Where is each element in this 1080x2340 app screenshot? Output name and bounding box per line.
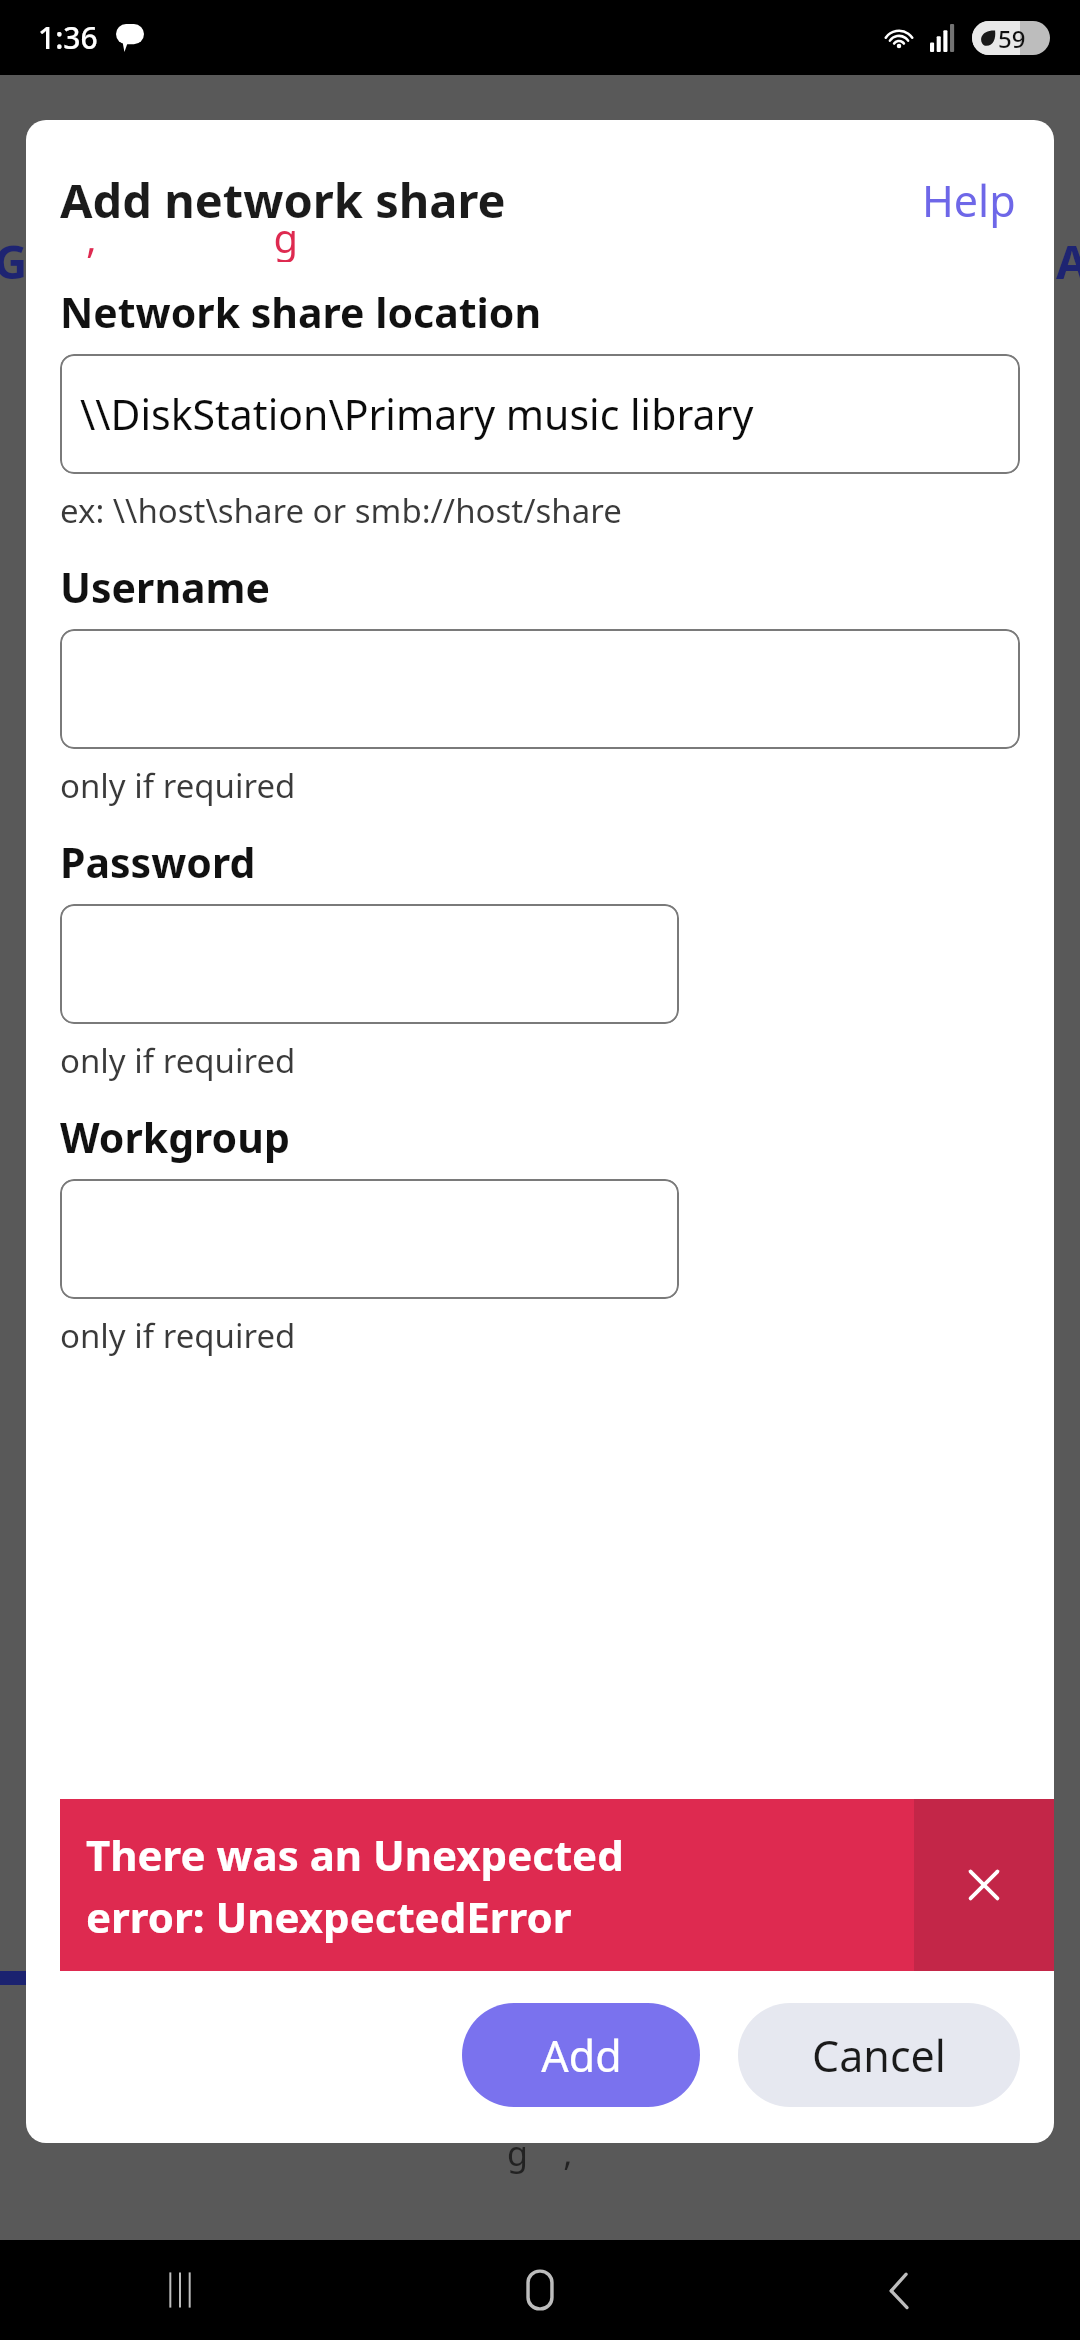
staticText: Username [60, 559, 271, 615]
staticText: A [1056, 230, 1080, 293]
staticText: g , [507, 2130, 573, 2176]
staticText: Cancel [812, 2026, 946, 2085]
button[interactable] [60, 629, 1020, 749]
staticText: only if required [60, 1038, 296, 1083]
button[interactable]: Recent apps [0, 2240, 360, 2340]
button[interactable] [60, 1179, 679, 1299]
button[interactable] [60, 904, 679, 1024]
staticText: , g [86, 210, 299, 262]
staticText: only if required [60, 763, 296, 808]
staticText: \\DiskStation\Primary music library [80, 386, 754, 442]
staticText: 1:36 [38, 17, 98, 58]
staticText: 59 [998, 22, 1026, 55]
staticText: Add network share [60, 168, 506, 232]
button[interactable]: Dismiss error [914, 1799, 1054, 1971]
staticText: ex: \\host\share or smb://host/share [60, 488, 622, 533]
button[interactable]: Help [918, 169, 1020, 232]
button[interactable]: Cancel [738, 2003, 1020, 2107]
staticText: Network share location [60, 284, 542, 340]
staticText: Add [541, 2026, 622, 2085]
staticText: only if required [60, 1313, 296, 1358]
staticText: Password [60, 834, 256, 890]
button[interactable]: Back [720, 2240, 1080, 2340]
staticText: Help [922, 171, 1016, 230]
staticText: G [0, 230, 28, 293]
staticText: There was an Unexpected error: Unexpecte… [86, 1826, 624, 1945]
button[interactable]: Add [462, 2003, 700, 2107]
staticText: Workgroup [60, 1109, 290, 1165]
button[interactable]: \\DiskStation\Primary music library [60, 354, 1020, 474]
button[interactable]: Home [360, 2240, 720, 2340]
